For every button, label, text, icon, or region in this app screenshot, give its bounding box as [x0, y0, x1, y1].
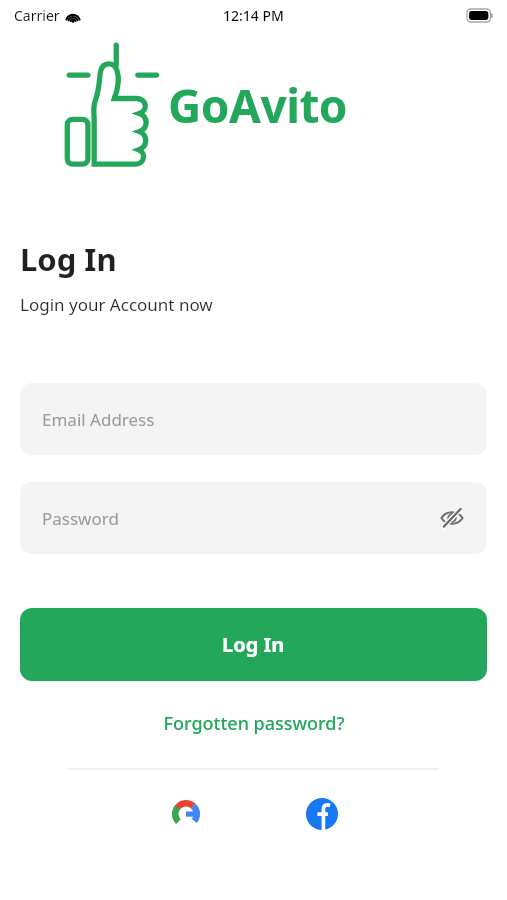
staticText: Log In	[20, 238, 117, 280]
staticText: Forgotten password?	[163, 711, 345, 736]
staticText: GoAvito	[168, 74, 348, 137]
button[interactable]: Password	[20, 482, 487, 554]
button[interactable]: Show password	[435, 501, 469, 535]
staticText: Email Address	[42, 408, 155, 431]
staticText: Carrier	[14, 6, 60, 25]
staticText: 12:14 PM	[223, 6, 284, 25]
button[interactable]: Log In	[20, 608, 487, 681]
button[interactable]: Forgotten password?	[0, 701, 507, 746]
staticText: Password	[42, 507, 119, 530]
staticText: Login your Account now	[20, 293, 213, 316]
button[interactable]: Sign in with Google	[162, 790, 210, 838]
button[interactable]: Email Address	[20, 383, 487, 455]
staticText: Log In	[222, 631, 285, 658]
button[interactable]: Sign in with Facebook	[298, 790, 346, 838]
